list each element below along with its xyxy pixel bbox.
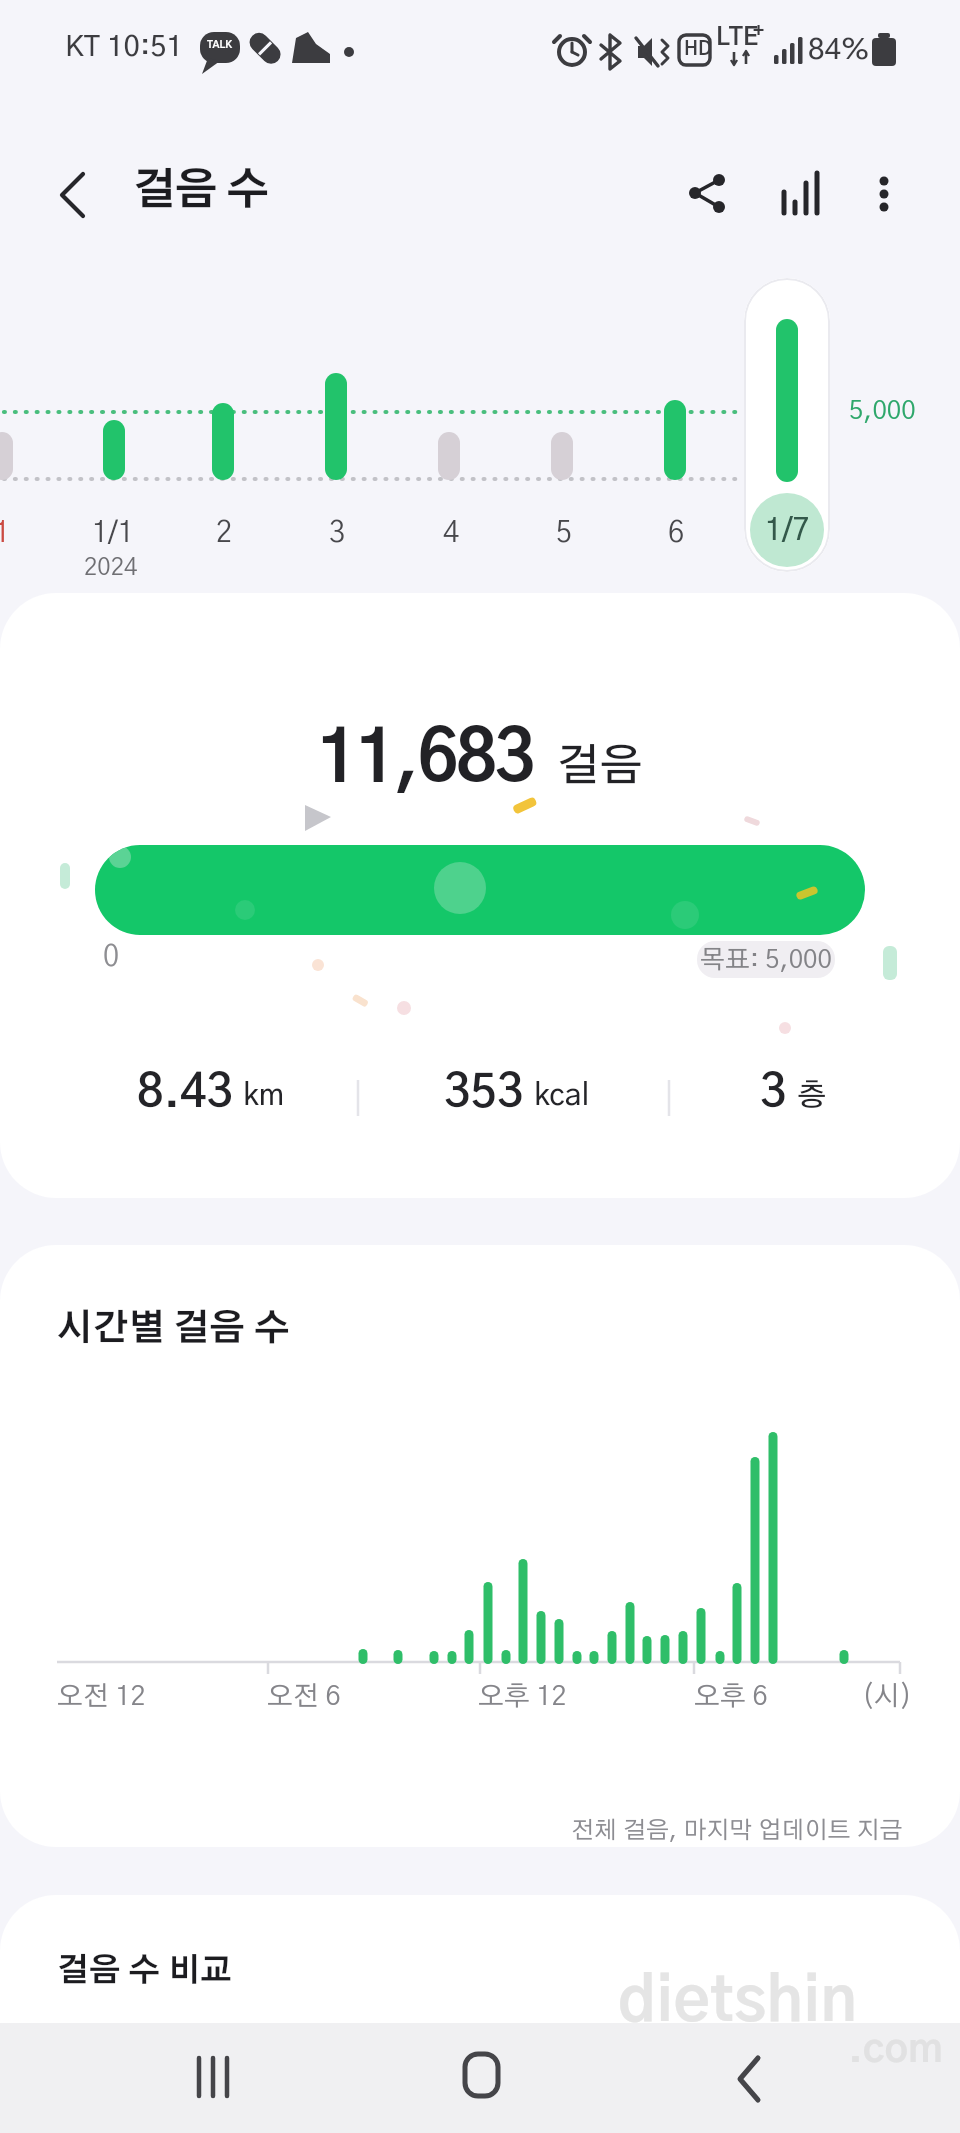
staticText: HD <box>684 40 712 59</box>
staticText: TALK <box>207 40 233 50</box>
staticText: (시) <box>862 1683 912 1710</box>
button[interactable] <box>428 2023 534 2133</box>
staticText: 오후 6 <box>694 1683 768 1710</box>
staticText: 오전 12 <box>57 1683 146 1710</box>
staticText: km <box>243 1081 284 1111</box>
button[interactable]: 353 <box>367 1070 667 1116</box>
button[interactable] <box>700 2023 806 2133</box>
staticText: dietshin <box>618 1972 857 2034</box>
button[interactable]: 3 <box>643 1070 943 1116</box>
staticText: 5 <box>556 519 573 548</box>
staticText: 걸음 <box>557 745 643 789</box>
staticText: 1 <box>0 519 11 548</box>
staticText: KT 10:51 <box>65 33 184 62</box>
staticText: 3 <box>760 1070 787 1116</box>
staticText: 걸음 수 <box>133 170 268 213</box>
staticText: 353 <box>444 1070 524 1116</box>
button[interactable] <box>744 278 830 572</box>
staticText: 4 <box>443 519 460 548</box>
button[interactable] <box>680 166 736 222</box>
staticText: .com <box>848 2030 943 2070</box>
staticText: 1/7 <box>765 516 810 546</box>
staticText: 84% <box>808 36 870 65</box>
staticText: 층 <box>797 1081 827 1111</box>
staticText: 3 <box>329 519 346 548</box>
staticText: 시간별 걸음 수 <box>57 1311 290 1347</box>
staticText: 오전 6 <box>267 1683 341 1710</box>
staticText: 8.43 <box>137 1070 233 1116</box>
staticText: 전체 걸음, 마지막 업데이트 지금 <box>571 1819 903 1843</box>
staticText: + <box>753 22 765 41</box>
button[interactable] <box>44 165 104 225</box>
staticText: 11,683 <box>317 725 533 795</box>
staticText: 오후 12 <box>478 1683 567 1710</box>
staticText: 2 <box>216 519 233 548</box>
button[interactable]: 8.43 <box>60 1070 360 1116</box>
button[interactable]: 목표: 5,000 <box>697 941 835 978</box>
staticText: kcal <box>534 1081 590 1111</box>
staticText: 0 <box>103 943 120 972</box>
staticText: 2024 <box>84 556 138 580</box>
button[interactable] <box>160 2023 266 2133</box>
staticText: 목표: 5,000 <box>700 947 832 973</box>
button[interactable] <box>858 166 910 218</box>
staticText: 5,000 <box>849 398 916 424</box>
button[interactable] <box>770 166 826 222</box>
staticText: 걸음 수 비교 <box>57 1955 232 1987</box>
staticText: 1/1 <box>92 519 134 548</box>
staticText: 6 <box>668 519 685 548</box>
staticText: LTE <box>716 26 759 50</box>
